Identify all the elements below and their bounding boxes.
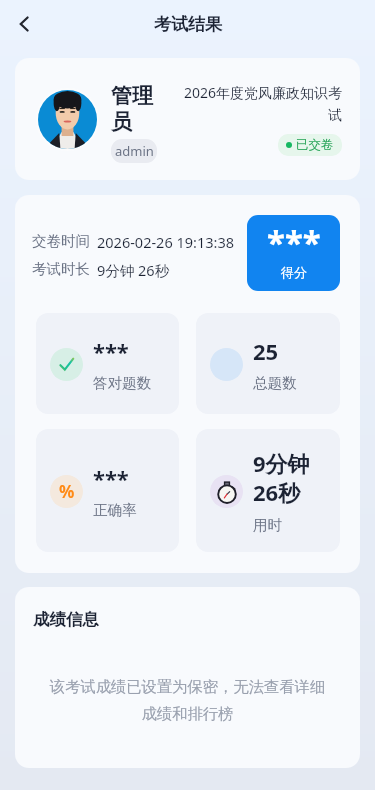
staticText: 正确率 (93, 501, 137, 519)
staticText: 总题数 (253, 374, 297, 392)
button[interactable]: 25 (196, 313, 340, 414)
button[interactable]: Back (4, 4, 44, 44)
staticText: % (59, 480, 75, 503)
button[interactable]: *** (36, 313, 179, 414)
staticText: 得分 (281, 264, 307, 280)
staticText: 25 (253, 336, 279, 366)
staticText: 9分钟 26秒 (97, 260, 170, 280)
staticText: 成绩信息 (33, 609, 99, 630)
button[interactable]: % (36, 429, 179, 552)
staticText: *** (267, 220, 321, 265)
staticText: 管理员 (111, 83, 157, 135)
staticText: *** (93, 463, 129, 493)
staticText: 2026-02-26 19:13:38 (97, 232, 234, 252)
staticText: *** (93, 336, 129, 366)
staticText: 9分钟 26秒 (253, 448, 310, 508)
staticText: 考试时长 (32, 260, 90, 278)
staticText: admin (115, 142, 154, 160)
staticText: 该考试成绩已设置为保密，无法查看详细成绩和排行榜 (45, 677, 330, 724)
staticText: 交卷时间 (32, 232, 90, 250)
staticText: 考试结果 (154, 14, 222, 35)
staticText: 2026年度党风廉政知识考试 (183, 83, 342, 125)
button[interactable]: 9分钟 26秒 (196, 429, 340, 552)
staticText: 答对题数 (93, 374, 151, 392)
staticText: 用时 (253, 516, 282, 534)
staticText: 已交卷 (296, 137, 334, 153)
